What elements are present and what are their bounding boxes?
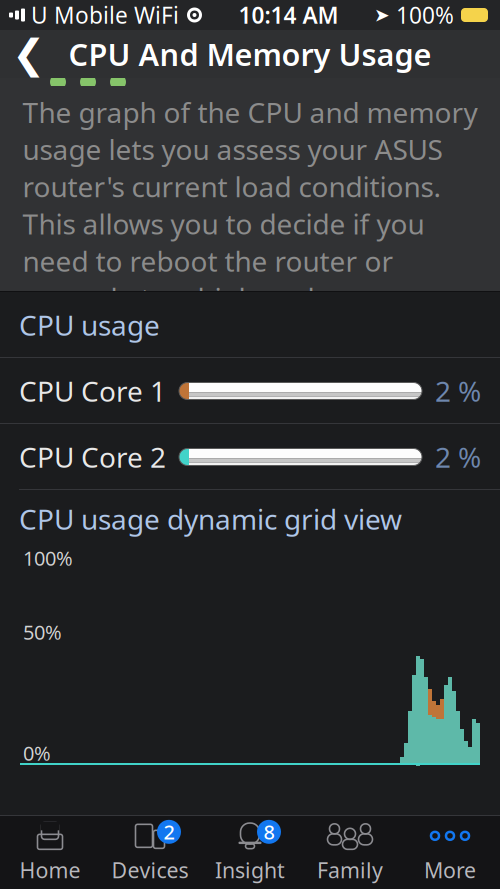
- staticText: CPU Core 2: [19, 438, 166, 476]
- button[interactable]: 8: [200, 815, 300, 889]
- staticText: ❮: [12, 31, 46, 77]
- staticText: Family: [317, 856, 383, 884]
- staticText: Devices: [111, 856, 188, 884]
- staticText: The graph of the CPU and memory usage le…: [22, 93, 477, 317]
- button[interactable]: Back: [0, 30, 58, 78]
- button[interactable]: [400, 815, 500, 889]
- staticText: CPU usage: [19, 306, 160, 344]
- staticText: CPU Core 1: [19, 372, 166, 410]
- staticText: Insight: [215, 856, 285, 884]
- staticText: CPU And Memory Usage: [68, 34, 431, 74]
- staticText: 2: [163, 819, 174, 845]
- staticText: More: [424, 856, 476, 884]
- button[interactable]: [300, 815, 400, 889]
- button[interactable]: CPU Core 1: [0, 358, 500, 424]
- staticText: CPU usage dynamic grid view: [19, 500, 402, 538]
- staticText: 2 %: [435, 372, 481, 410]
- button[interactable]: CPU Core 2: [0, 424, 500, 490]
- staticText: 0%: [23, 740, 51, 766]
- staticText: 100%: [396, 0, 454, 30]
- staticText: 50%: [23, 619, 62, 645]
- button[interactable]: 2: [100, 815, 200, 889]
- staticText: 100%: [23, 545, 73, 571]
- staticText: 8: [263, 819, 274, 845]
- staticText: 2 %: [435, 438, 481, 476]
- staticText: ➤: [374, 4, 390, 26]
- button[interactable]: [0, 815, 100, 889]
- staticText: 10:14 AM: [238, 0, 338, 30]
- staticText: Home: [19, 856, 80, 884]
- staticText: U Mobile WiFi: [31, 0, 179, 30]
